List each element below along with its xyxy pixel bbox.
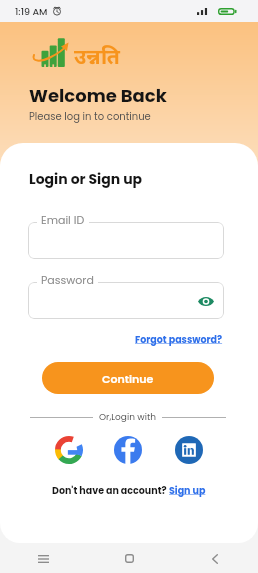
button[interactable]: Sign in with LinkedIn <box>175 436 203 464</box>
staticText: Password <box>41 272 94 287</box>
button[interactable]: Sign up <box>169 484 206 497</box>
staticText: Welcome Back <box>29 83 167 108</box>
button[interactable]: Back <box>172 544 258 573</box>
staticText: Login or Sign up <box>29 169 143 189</box>
staticText: Continue <box>102 371 154 386</box>
button[interactable]: Recent apps <box>0 544 86 573</box>
staticText: Sign up <box>169 484 206 497</box>
button[interactable]: Show password <box>197 292 215 310</box>
staticText: Forgot password? <box>135 333 223 346</box>
button[interactable] <box>28 282 224 319</box>
staticText: उन्नति <box>74 42 120 71</box>
staticText: Email ID <box>41 212 85 227</box>
button[interactable]: Sign in with Facebook <box>114 436 142 464</box>
button[interactable]: Forgot password? <box>135 333 223 346</box>
staticText: Please log in to continue <box>29 109 151 123</box>
staticText: Don't have an account? <box>52 484 169 497</box>
button[interactable]: Continue <box>42 362 214 394</box>
staticText: 1:19 AM <box>15 5 48 18</box>
button[interactable]: Sign in with Google <box>55 436 83 464</box>
button[interactable]: Home <box>86 544 172 573</box>
staticText: Or,Login with <box>99 411 156 424</box>
button[interactable] <box>28 222 224 259</box>
